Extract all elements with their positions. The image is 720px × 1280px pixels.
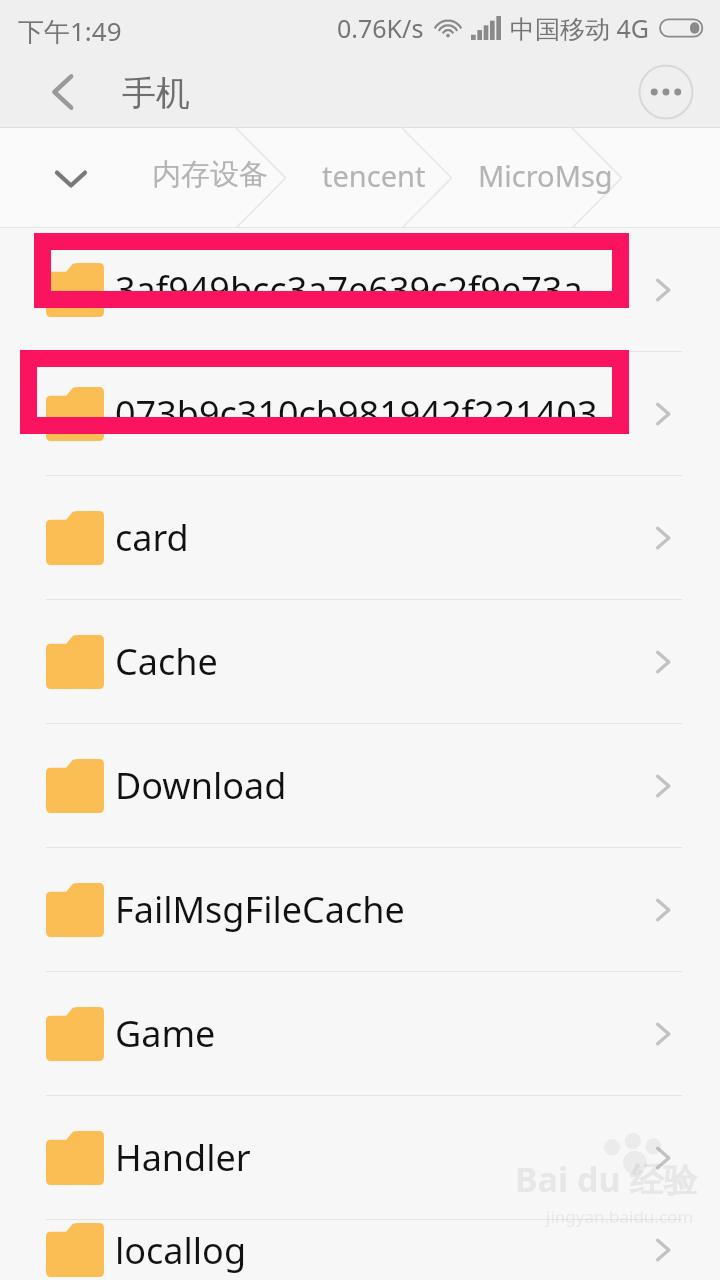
staticText: tencent xyxy=(322,156,426,195)
button[interactable]: Back xyxy=(34,62,94,122)
staticText: jingyan.baidu.com xyxy=(546,1205,694,1228)
staticText: Download xyxy=(115,761,287,810)
staticText: 3af949bcc3a7e639c2f9e73a. xyxy=(115,265,593,314)
button[interactable]: Handler xyxy=(0,1096,720,1219)
staticText: 手机 xyxy=(122,72,190,115)
staticText: Handler xyxy=(115,1133,251,1182)
staticText: Bai du 经验 xyxy=(515,1156,698,1202)
button[interactable]: Expand path xyxy=(44,151,98,205)
button[interactable]: locallog xyxy=(0,1220,720,1280)
button[interactable]: FailMsgFileCache xyxy=(0,848,720,971)
staticText: MicroMsg xyxy=(478,156,613,195)
staticText: Game xyxy=(115,1009,216,1058)
button[interactable]: More options xyxy=(638,64,694,120)
staticText: card xyxy=(115,513,189,562)
button[interactable]: MicroMsg xyxy=(478,156,613,195)
button[interactable]: 3af949bcc3a7e639c2f9e73a. xyxy=(0,228,720,351)
staticText: 中国移动 4G xyxy=(510,11,650,45)
button[interactable]: 内存设备 xyxy=(152,156,268,193)
staticText: 073b9c310cb981942f221403. xyxy=(115,389,608,438)
staticText: Cache xyxy=(115,637,218,686)
staticText: 内存设备 xyxy=(152,156,268,193)
button[interactable]: Download xyxy=(0,724,720,847)
staticText: FailMsgFileCache xyxy=(115,885,405,934)
button[interactable]: Game xyxy=(0,972,720,1095)
button[interactable]: Cache xyxy=(0,600,720,723)
button[interactable]: card xyxy=(0,476,720,599)
button[interactable]: 073b9c310cb981942f221403. xyxy=(0,352,720,475)
staticText: 0.76K/s xyxy=(337,11,424,45)
staticText: 下午1:49 xyxy=(18,13,122,49)
staticText: locallog xyxy=(115,1226,247,1275)
button[interactable]: tencent xyxy=(322,156,426,195)
